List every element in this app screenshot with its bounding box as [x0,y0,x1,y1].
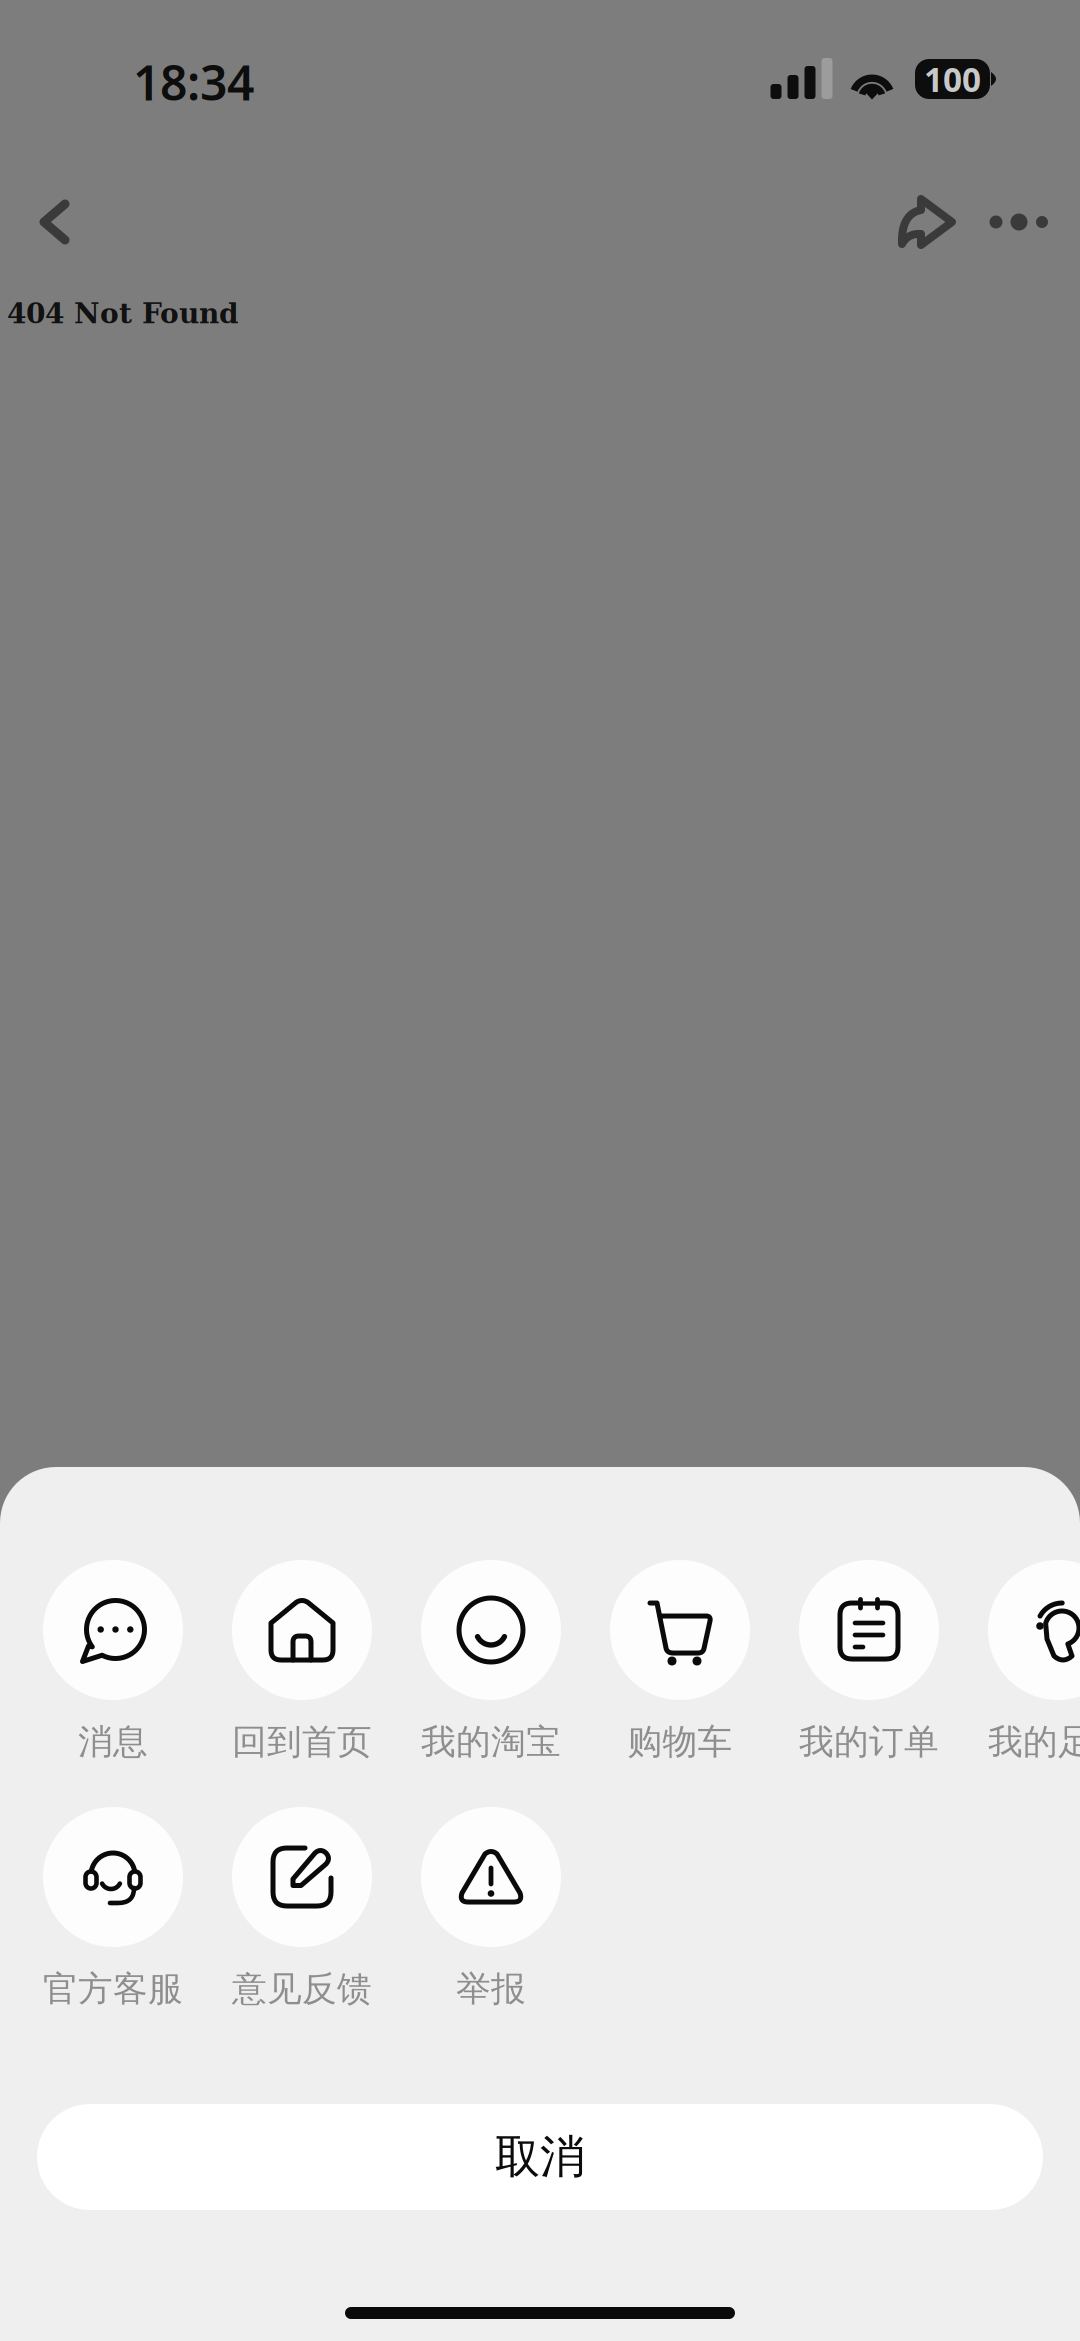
button[interactable]: 意见反馈 [207,1807,396,2009]
staticText: 官方客服 [43,1968,183,2010]
staticText: 100 [924,57,981,101]
staticText: 意见反馈 [232,1968,372,2010]
staticText: 消息 [78,1721,148,1763]
button[interactable]: 举报 [396,1807,585,2009]
button[interactable]: 我的订单 [774,1560,963,1762]
button[interactable]: 我的淘宝 [396,1560,585,1762]
button[interactable]: 官方客服 [18,1807,207,2009]
staticText: 18:34 [133,50,254,114]
staticText: 404 Not Found [7,297,239,330]
button[interactable]: 回到首页 [207,1560,396,1762]
button[interactable]: More [976,174,1062,270]
button[interactable]: 购物车 [585,1560,774,1762]
staticText: 我的足迹 [988,1721,1080,1763]
button[interactable]: Back [7,174,103,270]
staticText: 回到首页 [232,1721,372,1763]
staticText: 我的淘宝 [421,1721,561,1763]
button[interactable]: 取消 [37,2104,1043,2210]
staticText: 取消 [495,2129,585,2185]
staticText: 举报 [456,1968,526,2010]
button[interactable]: 我的足迹 [963,1560,1080,1762]
button[interactable]: 消息 [18,1560,207,1762]
button[interactable]: Share [881,174,977,270]
staticText: 购物车 [627,1721,732,1763]
staticText: 我的订单 [799,1721,939,1763]
